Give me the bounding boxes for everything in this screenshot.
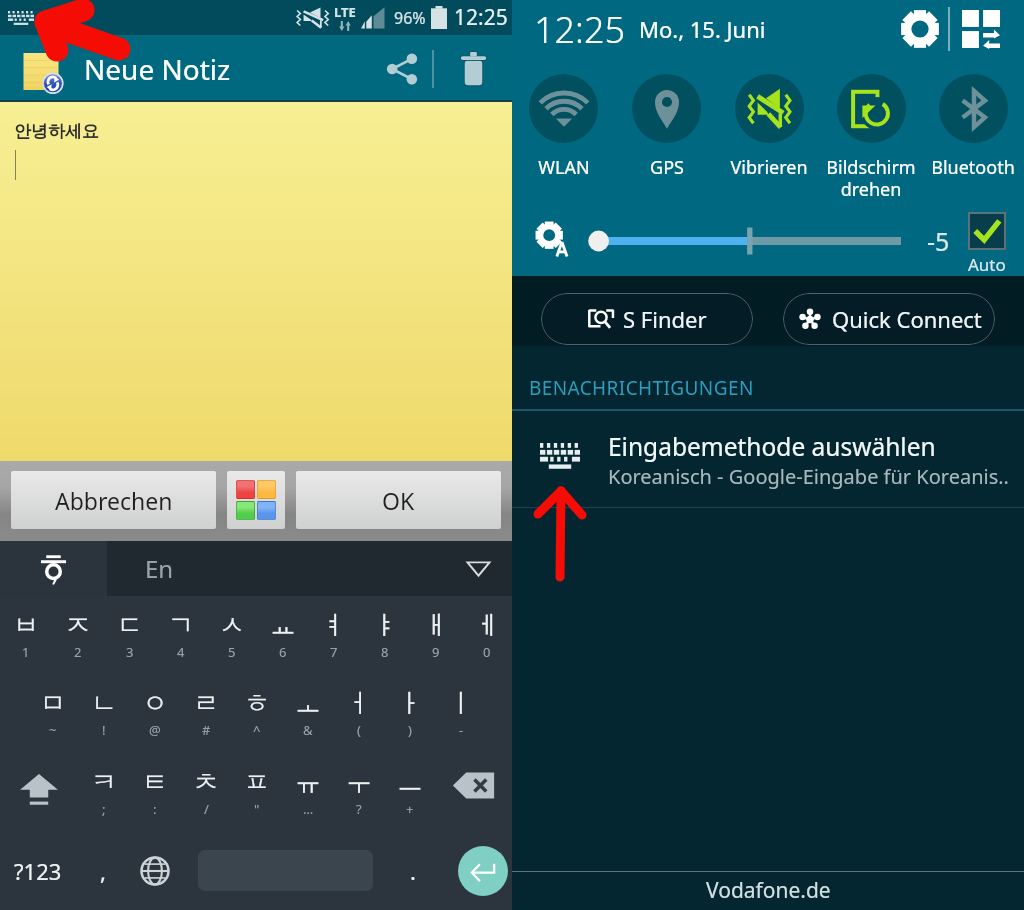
staticText: ㅔ	[474, 609, 500, 642]
staticText: ㅋ	[91, 766, 117, 799]
staticText: ㅐ	[423, 609, 449, 642]
button[interactable]: Abbrechen	[11, 471, 216, 529]
staticText: +	[406, 800, 414, 818]
button[interactable]: S Finder	[541, 293, 753, 345]
button[interactable]: ㅐ	[410, 596, 461, 674]
staticText: ^	[253, 721, 261, 739]
button[interactable]: Backspace	[435, 752, 512, 831]
button[interactable]: ㅕ	[308, 596, 359, 674]
staticText: ㅏ	[397, 687, 423, 720]
staticText: ;	[102, 800, 106, 818]
button[interactable]: .	[373, 831, 453, 910]
staticText: Bildschirm drehen	[826, 155, 916, 202]
staticText: ㅕ	[321, 609, 347, 642]
button[interactable]: Delete	[434, 35, 512, 102]
staticText: 12:25	[454, 3, 508, 32]
button[interactable]: Vibrieren	[718, 58, 820, 206]
button[interactable]: ㅏ	[384, 674, 435, 752]
staticText: ㅠ	[295, 766, 321, 799]
staticText: WLAN	[538, 155, 590, 180]
staticText: )	[408, 721, 412, 739]
staticText: 8	[381, 643, 389, 661]
staticText: !	[102, 721, 106, 739]
staticText: ㅁ	[40, 687, 66, 720]
button[interactable]: Edit quick settings	[950, 0, 1012, 58]
staticText: /	[204, 800, 209, 818]
button[interactable]: ㅌ	[129, 752, 180, 831]
button[interactable]: Change language	[129, 831, 180, 910]
staticText: Mo., 15. Juni	[639, 14, 766, 44]
staticText: 1	[22, 643, 30, 661]
button[interactable]: ㅓ	[333, 674, 384, 752]
button[interactable]: ㅇ	[129, 674, 180, 752]
button[interactable]: ㅛ	[257, 596, 308, 674]
staticText: Bluetooth	[931, 155, 1015, 180]
button[interactable]: ㄷ	[104, 596, 155, 674]
button[interactable]: ㄱ	[155, 596, 206, 674]
staticText: (	[357, 721, 361, 739]
staticText: ㅇ	[142, 687, 168, 720]
button[interactable]: Settings	[892, 1, 948, 57]
staticText: Eingabemethode auswählen	[608, 430, 936, 463]
staticText: 안녕하세요	[14, 121, 99, 142]
button[interactable]: ㅈ	[52, 596, 104, 674]
staticText: ㅣ	[448, 687, 474, 720]
button[interactable]: OK	[296, 471, 501, 529]
staticText: OK	[382, 485, 415, 516]
staticText: ㄴ	[91, 687, 117, 720]
staticText: -5	[927, 224, 950, 258]
button[interactable]: Bluetooth	[922, 58, 1024, 206]
staticText: Vodafone.de	[706, 876, 831, 905]
button[interactable]: Auto brightness	[968, 212, 1006, 250]
staticText: ㅛ	[270, 609, 296, 642]
staticText: ㅍ	[244, 766, 270, 799]
button[interactable]: ㅊ	[180, 752, 231, 831]
button[interactable]: Bildschirm drehen	[820, 58, 922, 206]
staticText: 9	[432, 643, 440, 661]
staticText: 5	[228, 643, 236, 661]
staticText: 3	[126, 643, 134, 661]
staticText: "	[254, 800, 260, 818]
staticText: 0	[483, 643, 491, 661]
button[interactable]: ㅅ	[206, 596, 257, 674]
staticText: BENACHRICHTIGUNGEN	[529, 375, 754, 401]
staticText: ~	[49, 721, 57, 739]
staticText: -	[459, 721, 464, 739]
button[interactable]: ㅂ	[0, 596, 52, 674]
button[interactable]: Shift	[0, 752, 78, 831]
button[interactable]: ㅗ	[282, 674, 333, 752]
staticText: 7	[330, 643, 338, 661]
button[interactable]: ,	[76, 831, 129, 910]
staticText: ㅌ	[142, 766, 168, 799]
button[interactable]: ㅑ	[359, 596, 410, 674]
button[interactable]: ㅎ	[231, 674, 282, 752]
button[interactable]: ㄹ	[180, 674, 231, 752]
button[interactable]: ㅣ	[435, 674, 486, 752]
button[interactable]: ㅁ	[27, 674, 78, 752]
button[interactable]: ㅠ	[282, 752, 333, 831]
button[interactable]: ㅋ	[78, 752, 129, 831]
button[interactable]: ㅡ	[384, 752, 435, 831]
staticText: ㄱ	[168, 609, 194, 642]
button[interactable]: ㅍ	[231, 752, 282, 831]
staticText: ㅎ	[244, 687, 270, 720]
button[interactable]: Korean input	[0, 541, 107, 596]
button[interactable]: ㅔ	[461, 596, 512, 674]
button[interactable]: ?123	[0, 831, 76, 910]
button[interactable]: GPS	[615, 58, 718, 206]
button[interactable]: Quick Connect	[783, 293, 995, 345]
staticText: 12:25	[534, 5, 626, 54]
button[interactable]: Share	[372, 35, 432, 102]
button[interactable]: WLAN	[512, 58, 615, 206]
button[interactable]: Keyboard layout	[227, 471, 285, 529]
button[interactable]: Eingabemethode auswählen	[512, 411, 1024, 508]
button[interactable]: ㄴ	[78, 674, 129, 752]
button[interactable]: Enter	[458, 846, 508, 896]
staticText: Koreanisch - Google-Eingabe für Koreanis…	[608, 463, 1009, 490]
staticText: 2	[74, 643, 82, 661]
staticText: .	[410, 856, 416, 886]
staticText: ㅑ	[372, 609, 398, 642]
button[interactable]: ㅜ	[333, 752, 384, 831]
staticText: ㄹ	[193, 687, 219, 720]
